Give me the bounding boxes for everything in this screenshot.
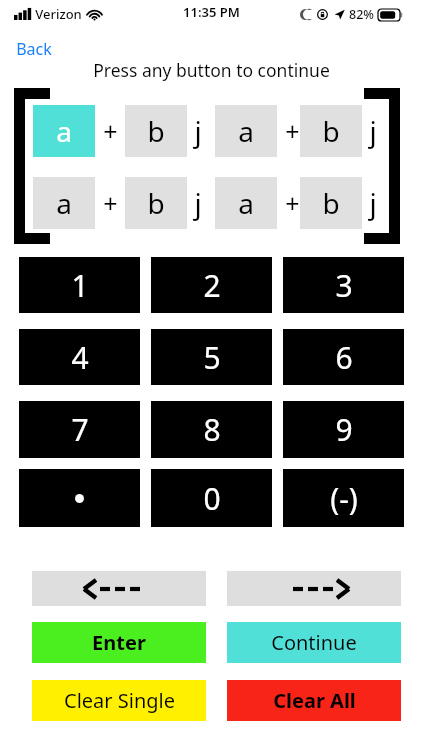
button[interactable]: 1 xyxy=(19,257,140,313)
button[interactable] xyxy=(19,469,140,527)
staticText: (-) xyxy=(330,478,358,519)
staticText: j xyxy=(194,184,202,222)
button[interactable]: (-) xyxy=(283,469,404,527)
staticText: Back xyxy=(16,38,52,60)
staticText: a xyxy=(238,184,254,222)
button[interactable]: 7 xyxy=(19,401,140,458)
staticText: 82% xyxy=(349,6,374,23)
button[interactable]: Clear All xyxy=(227,680,401,721)
button[interactable]: 8 xyxy=(151,401,272,458)
staticText: 3 xyxy=(335,265,353,306)
button[interactable]: a xyxy=(33,177,95,229)
staticText: 0 xyxy=(203,478,221,519)
button[interactable]: Enter xyxy=(32,622,206,663)
button[interactable]: Previous xyxy=(32,571,206,606)
staticText: + xyxy=(285,186,300,220)
staticText: j xyxy=(369,184,377,222)
staticText: + xyxy=(285,114,300,148)
button[interactable]: Continue xyxy=(227,622,401,663)
staticText: 8 xyxy=(203,409,221,450)
staticText: 2 xyxy=(203,265,221,306)
staticText: b xyxy=(147,112,165,150)
staticText: Press any button to continue xyxy=(93,58,330,82)
button[interactable]: 9 xyxy=(283,401,404,458)
button[interactable]: 0 xyxy=(151,469,272,527)
staticText: Enter xyxy=(92,629,146,656)
button[interactable]: a xyxy=(215,105,277,157)
staticText: Verizon xyxy=(35,5,82,23)
staticText: j xyxy=(194,112,202,150)
staticText: b xyxy=(322,184,340,222)
button[interactable]: Next xyxy=(227,571,401,606)
button[interactable]: a xyxy=(33,105,95,157)
staticText: 7 xyxy=(71,409,89,450)
staticText: j xyxy=(369,112,377,150)
button[interactable]: b xyxy=(125,177,187,229)
button[interactable]: 2 xyxy=(151,257,272,313)
staticText: b xyxy=(147,184,165,222)
button[interactable]: b xyxy=(125,105,187,157)
staticText: 6 xyxy=(335,337,353,378)
staticText: b xyxy=(322,112,340,150)
staticText: Clear Single xyxy=(64,687,175,714)
staticText: Continue xyxy=(271,629,357,656)
staticText: a xyxy=(56,184,72,222)
button[interactable]: b xyxy=(300,105,362,157)
staticText: 1 xyxy=(71,265,89,306)
button[interactable]: Back xyxy=(14,36,54,62)
button[interactable]: 3 xyxy=(283,257,404,313)
staticText: a xyxy=(56,112,72,150)
staticText: 4 xyxy=(71,337,89,378)
button[interactable]: 4 xyxy=(19,329,140,385)
staticText: + xyxy=(103,114,118,148)
staticText: 5 xyxy=(203,337,221,378)
staticText: + xyxy=(103,186,118,220)
staticText: 9 xyxy=(335,409,353,450)
button[interactable]: Clear Single xyxy=(32,680,206,721)
button[interactable]: 5 xyxy=(151,329,272,385)
staticText: a xyxy=(238,112,254,150)
button[interactable]: 6 xyxy=(283,329,404,385)
button[interactable]: a xyxy=(215,177,277,229)
staticText: 11:35 PM xyxy=(183,3,240,21)
staticText: Clear All xyxy=(273,687,356,714)
button[interactable]: b xyxy=(300,177,362,229)
